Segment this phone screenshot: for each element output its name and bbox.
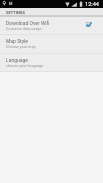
staticText: Language [6,57,28,63]
staticText: 12:44 [85,1,99,8]
button[interactable]: Toggle download over wifi [82,16,96,34]
staticText: Download Over Wifi [6,20,50,26]
staticText: choose your language [6,63,44,67]
staticText: SETTINGS [6,10,25,15]
button[interactable]: Map Style [0,34,103,52]
staticText: Conserve data usage [6,26,42,30]
button[interactable]: Download Over Wifi [0,16,103,34]
staticText: Choose your map [6,44,36,48]
staticText: Map Style [6,38,28,44]
button[interactable]: Language [0,53,103,71]
